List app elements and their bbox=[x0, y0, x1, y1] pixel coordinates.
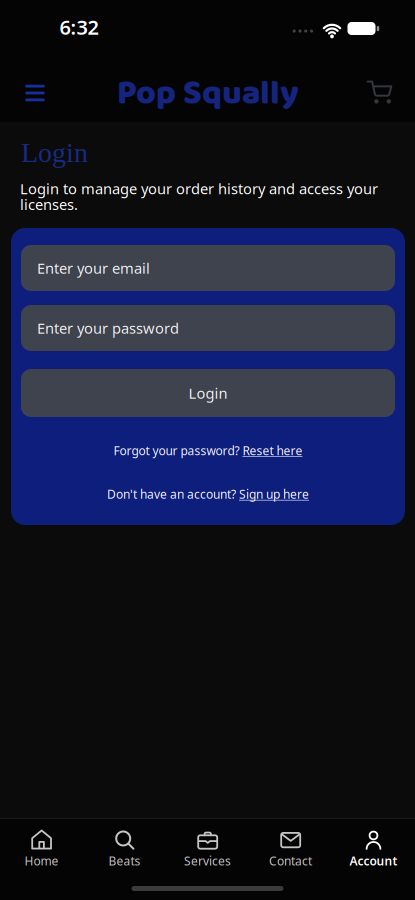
button[interactable]: Enter your email bbox=[21, 245, 395, 291]
button[interactable]: Account bbox=[332, 821, 415, 879]
button[interactable]: Enter your password bbox=[21, 305, 395, 351]
staticText: Beats bbox=[108, 853, 140, 869]
button[interactable]: Contact bbox=[249, 821, 332, 879]
staticText: Home bbox=[24, 853, 58, 869]
staticText: Login bbox=[21, 137, 88, 168]
staticText: Forgot your password? Reset here bbox=[113, 442, 302, 458]
button[interactable]: Menu bbox=[17, 77, 53, 109]
staticText: Don't have an account? Sign up here bbox=[107, 486, 309, 502]
button[interactable]: Services bbox=[166, 821, 249, 879]
staticText: Contact bbox=[269, 853, 312, 869]
staticText: Pop Squally bbox=[117, 66, 299, 121]
button[interactable]: Beats bbox=[83, 821, 166, 879]
staticText: Enter your email bbox=[37, 258, 150, 278]
button[interactable]: Forgot your password? Reset here bbox=[113, 442, 302, 458]
button[interactable]: Login bbox=[21, 369, 395, 417]
button[interactable]: Don't have an account? Sign up here bbox=[107, 486, 309, 502]
staticText: Services bbox=[184, 853, 231, 869]
button[interactable]: Cart bbox=[366, 79, 394, 107]
staticText: Account bbox=[349, 853, 397, 869]
staticText: licenses. bbox=[20, 195, 78, 214]
staticText: Login bbox=[188, 383, 227, 403]
button[interactable]: Home bbox=[0, 821, 83, 879]
staticText: 6:32 bbox=[59, 14, 98, 40]
staticText: Login to manage your order history and a… bbox=[20, 179, 378, 198]
staticText: Enter your password bbox=[37, 318, 179, 338]
